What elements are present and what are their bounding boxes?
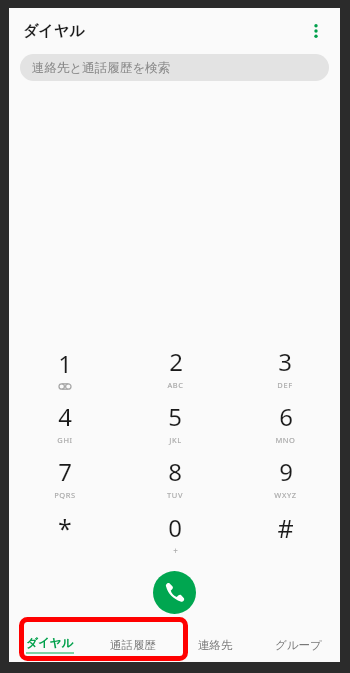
staticText: DEF xyxy=(277,380,293,390)
staticText: 連絡先 xyxy=(198,638,233,652)
button[interactable]: 2 xyxy=(120,341,230,396)
staticText: MNO xyxy=(275,435,296,445)
staticText: 通話履歴 xyxy=(110,638,156,652)
staticText: 4 xyxy=(58,400,72,433)
button[interactable]: 6 xyxy=(230,396,340,451)
staticText: 6 xyxy=(279,400,293,433)
staticText: グループ xyxy=(275,638,322,652)
staticText: ダイヤル xyxy=(23,22,85,41)
staticText: GHI xyxy=(57,435,73,445)
button[interactable]: グループ xyxy=(257,628,340,662)
staticText: + xyxy=(173,545,178,556)
staticText: 7 xyxy=(58,455,72,488)
staticText: JKL xyxy=(169,435,182,445)
staticText: 連絡先と通話履歴を検索 xyxy=(32,60,171,76)
staticText: WXYZ xyxy=(274,490,297,500)
button[interactable]: 8 xyxy=(120,451,230,506)
staticText: 3 xyxy=(278,345,292,378)
staticText: 0 xyxy=(168,511,182,544)
staticText: ダイヤル xyxy=(26,636,74,650)
button[interactable]: 3 xyxy=(230,341,340,396)
staticText: PQRS xyxy=(54,490,76,500)
staticText: * xyxy=(58,511,72,545)
button[interactable]: * xyxy=(9,506,120,561)
button[interactable]: 0 xyxy=(120,506,230,561)
button[interactable]: 4 xyxy=(9,396,120,451)
staticText: 5 xyxy=(168,400,182,433)
button[interactable]: 5 xyxy=(120,396,230,451)
button[interactable]: ダイヤル xyxy=(9,628,91,662)
button[interactable]: 7 xyxy=(9,451,120,506)
button[interactable]: More options xyxy=(296,11,336,51)
staticText: # xyxy=(277,511,294,545)
staticText: ABC xyxy=(167,380,184,390)
button[interactable]: 連絡先と通話履歴を検索 xyxy=(20,54,329,81)
button[interactable]: Call xyxy=(153,571,196,614)
staticText: 1 xyxy=(58,347,72,380)
button[interactable]: 9 xyxy=(230,451,340,506)
button[interactable]: 1 xyxy=(9,341,120,396)
button[interactable]: 通話履歴 xyxy=(91,628,174,662)
button[interactable]: # xyxy=(230,506,340,561)
staticText: 2 xyxy=(169,345,183,378)
staticText: 8 xyxy=(168,455,182,488)
staticText: TUV xyxy=(167,490,183,500)
staticText: 9 xyxy=(279,455,293,488)
button[interactable]: 連絡先 xyxy=(174,628,257,662)
